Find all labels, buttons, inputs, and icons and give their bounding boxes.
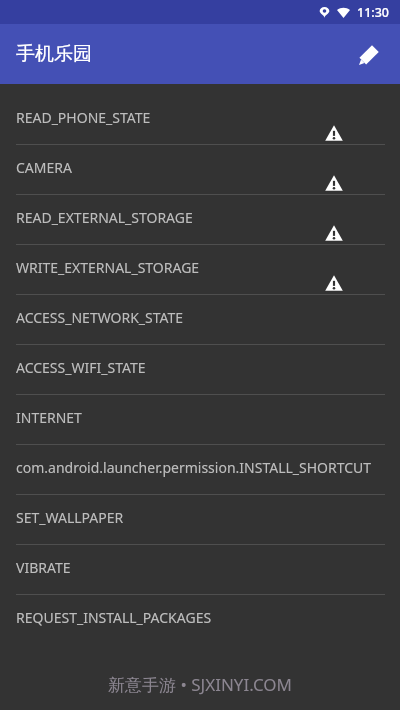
staticText: 11:30 [357,4,390,21]
staticText: ACCESS_NETWORK_STATE [16,308,184,327]
button[interactable]: VIBRATE [0,545,400,595]
staticText: REQUEST_INSTALL_PACKAGES [16,608,212,627]
staticText: SET_WALLPAPER [16,508,124,527]
staticText: READ_EXTERNAL_STORAGE [16,208,193,227]
button[interactable]: ACCESS_NETWORK_STATE [0,295,400,345]
staticText: READ_PHONE_STATE [16,108,151,127]
staticText: VIBRATE [16,558,71,577]
staticText: 手机乐园 [16,42,92,66]
button[interactable]: com.android.launcher.permission.INSTALL_… [0,445,400,495]
button[interactable]: CAMERA [0,145,400,195]
staticText: INTERNET [16,408,82,427]
staticText: CAMERA [16,158,72,177]
staticText: ACCESS_WIFI_STATE [16,358,146,377]
button[interactable]: ACCESS_WIFI_STATE [0,345,400,395]
staticText: com.android.launcher.permission.INSTALL_… [16,458,372,477]
button[interactable]: READ_EXTERNAL_STORAGE [0,195,400,245]
button[interactable]: Edit [345,30,393,78]
button[interactable]: READ_PHONE_STATE [0,95,400,145]
button[interactable]: SET_WALLPAPER [0,495,400,545]
staticText: WRITE_EXTERNAL_STORAGE [16,258,200,277]
button[interactable]: WRITE_EXTERNAL_STORAGE [0,245,400,295]
staticText: 新意手游 • SJXINYI.COM [0,673,400,696]
button[interactable]: INTERNET [0,395,400,445]
button[interactable]: REQUEST_INSTALL_PACKAGES [0,595,400,645]
